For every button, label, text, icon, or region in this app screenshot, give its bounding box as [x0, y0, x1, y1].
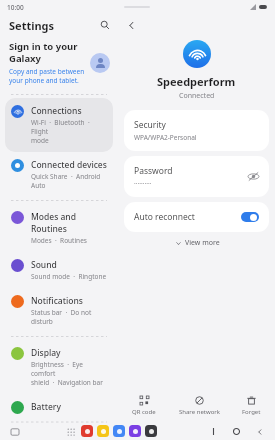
staticText: Battery — [31, 401, 61, 413]
button[interactable]: Notifications — [5, 288, 113, 333]
staticText: View more — [185, 238, 220, 248]
button[interactable]: Security — [124, 110, 269, 151]
button[interactable]: Back — [253, 425, 266, 438]
staticText: Password — [134, 165, 173, 177]
staticText: Quick Share · Android Auto — [31, 172, 107, 190]
staticText: Auto reconnect — [134, 211, 195, 223]
staticText: Speedperform — [157, 74, 236, 89]
staticText: Connected — [179, 91, 215, 101]
button[interactable]: QR code — [124, 393, 164, 418]
staticText: Forget — [242, 408, 261, 416]
staticText: Brightness · Eye comfort shield · Naviga… — [31, 360, 107, 387]
button[interactable]: App 2 — [113, 425, 125, 437]
button[interactable]: Display — [5, 340, 113, 394]
staticText: QR code — [132, 408, 156, 416]
staticText: Security — [134, 119, 166, 131]
button[interactable]: Recent apps — [207, 425, 220, 438]
button[interactable]: Auto reconnect toggle — [241, 212, 259, 222]
staticText: Status bar · Do not disturb — [31, 308, 107, 326]
staticText: Display — [31, 347, 61, 359]
button[interactable]: App 4 — [145, 425, 157, 437]
staticText: WPA/WPA2-Personal — [134, 133, 197, 142]
button[interactable]: Connected devices — [5, 152, 113, 197]
button[interactable]: Auto reconnect — [124, 202, 269, 232]
button[interactable]: Connections — [5, 98, 113, 152]
button[interactable]: Forget — [234, 393, 269, 418]
staticText: Sign in to your Galaxy — [9, 40, 78, 65]
staticText: Copy and paste between your phone and ta… — [9, 67, 85, 85]
staticText: Wi-Fi · Bluetooth · Flight mode — [31, 118, 107, 145]
staticText: Share network — [179, 408, 220, 416]
staticText: Connections — [31, 105, 82, 117]
button[interactable]: Battery — [5, 394, 113, 422]
button[interactable]: Back — [124, 18, 138, 32]
button[interactable]: Home — [230, 425, 243, 438]
staticText: Sound — [31, 259, 57, 271]
staticText: Settings — [9, 18, 55, 33]
button[interactable]: App 0 — [81, 425, 93, 437]
button[interactable]: All apps — [65, 426, 76, 437]
staticText: Modes and Routines — [31, 211, 107, 235]
button[interactable]: Sign in to your Galaxy — [0, 36, 118, 91]
button[interactable]: Modes and Routines — [5, 204, 113, 252]
button[interactable]: Sound — [5, 252, 113, 288]
staticText: Sound mode · Ringtone — [31, 272, 107, 281]
button[interactable]: Share network — [171, 393, 228, 418]
button[interactable]: View more — [124, 238, 269, 248]
button[interactable]: App 1 — [97, 425, 109, 437]
button[interactable]: Password — [124, 156, 269, 197]
button[interactable]: Search — [98, 18, 112, 32]
button[interactable]: Recents panel — [9, 426, 20, 437]
staticText: ·········· — [134, 179, 152, 188]
staticText: Connected devices — [31, 159, 107, 171]
staticText: Notifications — [31, 295, 83, 307]
staticText: Modes · Routines — [31, 236, 87, 245]
button[interactable]: App 3 — [129, 425, 141, 437]
staticText: 10:00 — [7, 3, 24, 12]
